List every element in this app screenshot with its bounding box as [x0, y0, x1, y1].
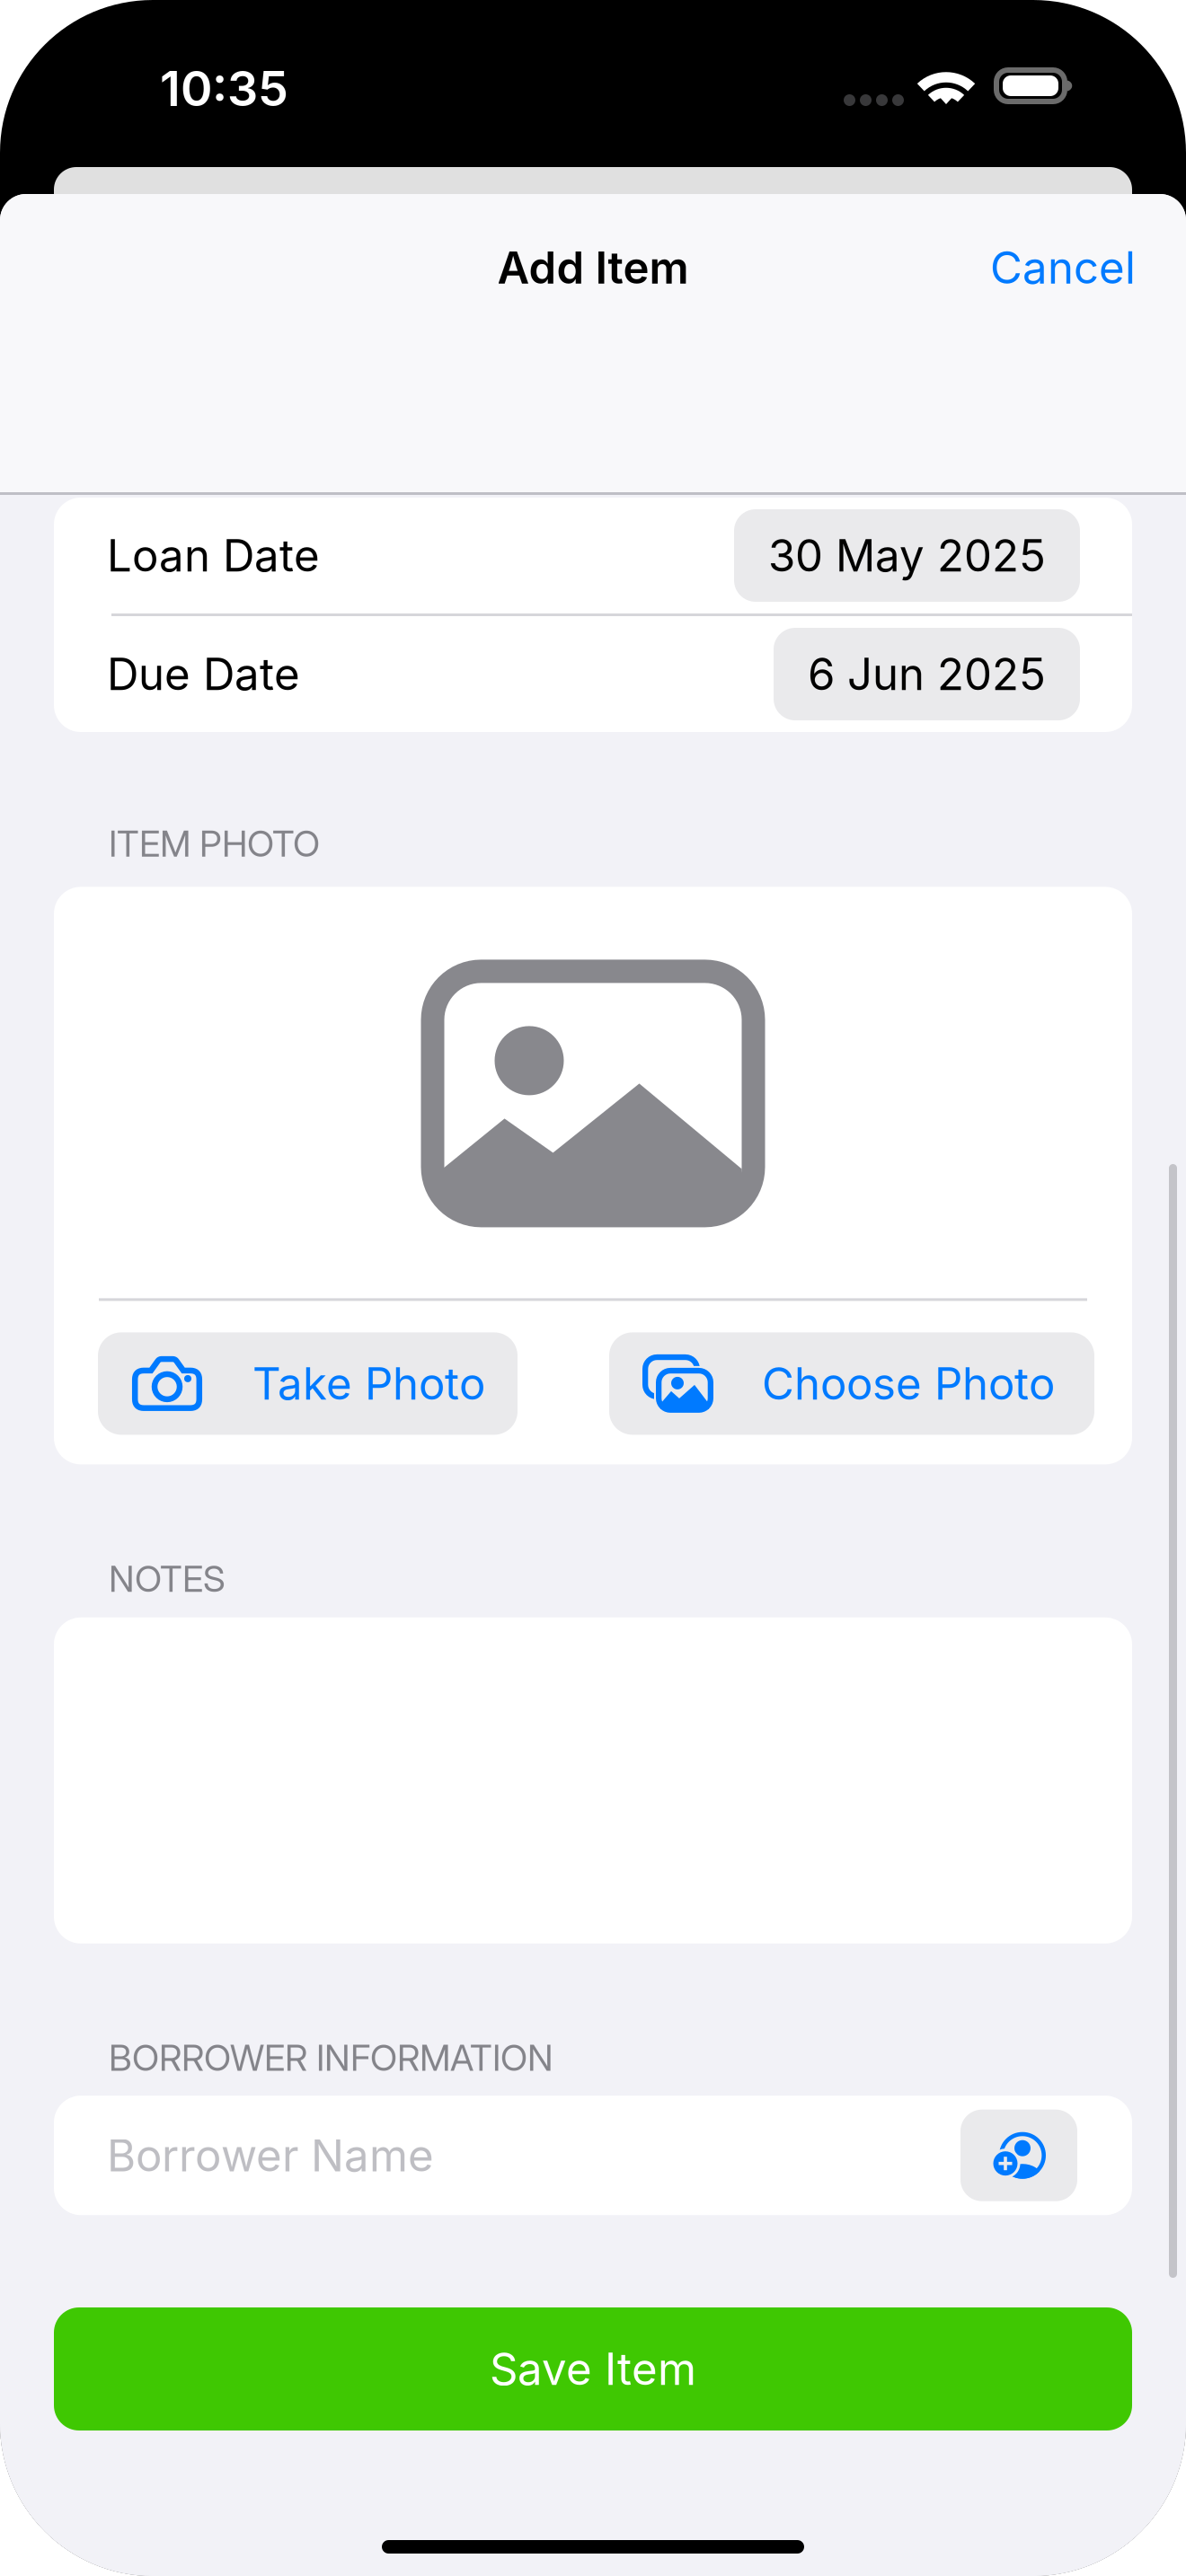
button[interactable]: 6 Jun 2025 — [774, 628, 1080, 720]
staticText: Due Date — [107, 647, 300, 701]
staticText: 6 Jun 2025 — [808, 647, 1046, 701]
staticText: 30 May 2025 — [768, 529, 1046, 582]
button[interactable]: Choose borrower from contacts — [960, 2110, 1077, 2201]
staticText: Cancel — [990, 241, 1136, 294]
button[interactable]: Cancel — [974, 227, 1152, 309]
button[interactable]: Take Photo — [98, 1332, 518, 1435]
staticText: 10:35 — [160, 59, 288, 118]
button[interactable]: Save Item — [54, 2307, 1132, 2430]
button[interactable]: Choose Photo — [609, 1332, 1094, 1435]
button[interactable]: 30 May 2025 — [734, 509, 1080, 602]
staticText: Loan Date — [107, 529, 320, 582]
staticText: BORROWER INFORMATION — [109, 2036, 553, 2079]
staticText: NOTES — [109, 1557, 226, 1600]
staticText: Take Photo — [252, 1357, 485, 1410]
staticText: Save Item — [490, 2342, 696, 2396]
staticText: Borrower Name — [107, 2129, 434, 2182]
staticText: ITEM PHOTO — [109, 822, 320, 865]
staticText: Choose Photo — [762, 1357, 1055, 1410]
staticText: Add Item — [497, 241, 689, 294]
